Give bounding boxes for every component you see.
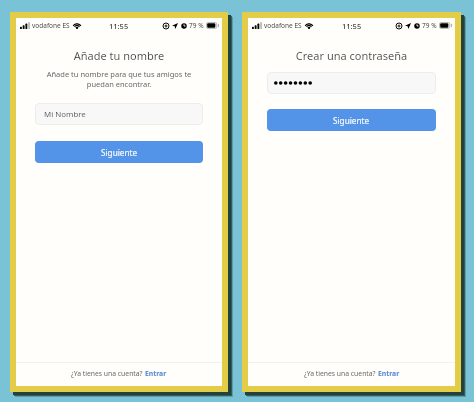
staticText: 11:55 bbox=[109, 21, 129, 31]
staticText: ¿Ya tienes una cuenta? bbox=[304, 369, 378, 378]
staticText: 11:55 bbox=[342, 21, 362, 31]
staticText: Siguiente bbox=[101, 147, 138, 158]
staticText: vodafone ES bbox=[32, 21, 70, 30]
staticText: Mi Nombre bbox=[44, 109, 86, 120]
staticText: Crear una contraseña bbox=[248, 48, 455, 63]
button[interactable]: Siguiente bbox=[267, 109, 436, 131]
button[interactable]: Mi Nombre bbox=[35, 103, 203, 125]
staticText: Añade tu nombre para que tus amigos te p… bbox=[16, 69, 222, 89]
staticText: Entrar bbox=[378, 369, 400, 378]
other: Password bbox=[274, 81, 312, 85]
button[interactable]: ¿Ya tienes una cuenta? bbox=[248, 363, 455, 386]
button[interactable]: ¿Ya tienes una cuenta? bbox=[16, 363, 222, 386]
staticText: Entrar bbox=[145, 369, 167, 378]
staticText: 79 % bbox=[189, 21, 204, 30]
button[interactable]: Siguiente bbox=[35, 141, 203, 163]
staticText: vodafone ES bbox=[264, 21, 302, 30]
button[interactable]: Password bbox=[267, 72, 436, 94]
staticText: 79 % bbox=[422, 21, 437, 30]
staticText: Siguiente bbox=[333, 115, 370, 126]
staticText: ¿Ya tienes una cuenta? bbox=[71, 369, 145, 378]
staticText: Añade tu nombre bbox=[16, 48, 222, 63]
